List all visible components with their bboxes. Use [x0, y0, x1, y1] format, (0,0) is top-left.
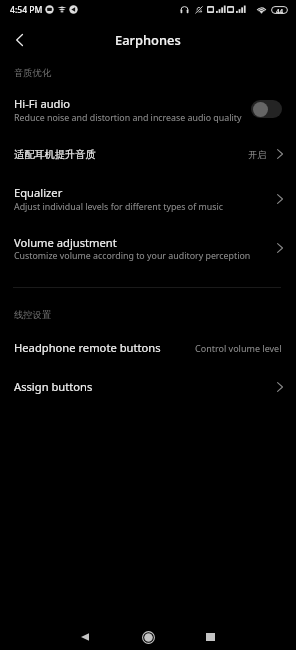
staticText: Adjust individual levels for different t… — [14, 201, 224, 213]
button[interactable]: Back — [65, 617, 105, 650]
staticText: 44 — [276, 7, 284, 15]
button[interactable]: Back — [2, 22, 36, 58]
button[interactable]: Home — [128, 617, 168, 650]
staticText: Headphone remote buttons — [14, 340, 161, 355]
staticText: Volume adjustment — [14, 235, 117, 250]
staticText: 音质优化 — [14, 67, 52, 79]
button[interactable]: Recent apps — [190, 617, 230, 650]
button[interactable]: Equalizer — [0, 177, 296, 221]
staticText: Earphones — [115, 31, 181, 49]
staticText: 开启 — [248, 149, 266, 160]
button[interactable]: 适配耳机提升音质 — [0, 133, 296, 173]
button[interactable]: Hi-Fi audio — [0, 88, 296, 121]
staticText: 4:54 PM — [10, 4, 43, 16]
staticText: 线控设置 — [14, 309, 52, 321]
staticText: Control volume level — [195, 342, 282, 354]
staticText: Hi-Fi audio — [14, 96, 71, 111]
button[interactable]: Volume adjustment — [0, 226, 296, 270]
staticText: Reduce noise and distortion and increase… — [14, 112, 242, 124]
staticText: 适配耳机提升音质 — [14, 148, 96, 161]
button[interactable]: Assign buttons — [0, 370, 296, 405]
staticText: Equalizer — [14, 185, 63, 200]
staticText: Customize volume according to your audit… — [14, 250, 251, 262]
staticText: Assign buttons — [14, 379, 93, 394]
button[interactable]: Headphone remote buttons — [0, 330, 296, 365]
button[interactable]: Hi-Fi audio switch — [251, 100, 282, 118]
